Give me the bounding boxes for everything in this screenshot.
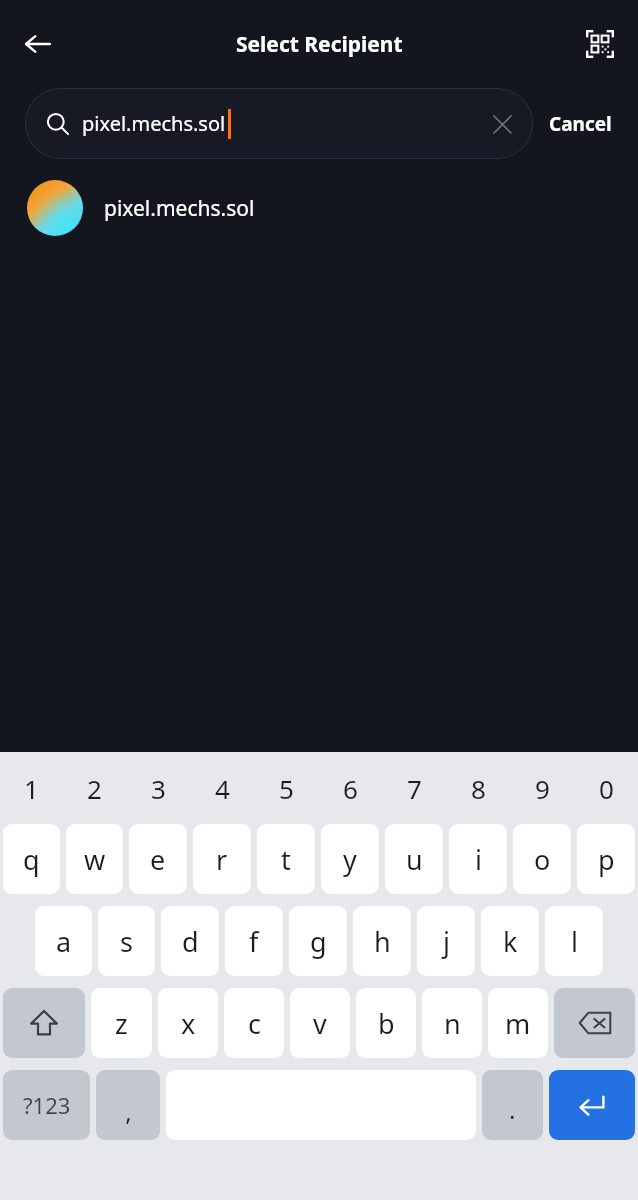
staticText: ?123 (23, 1090, 71, 1120)
button[interactable]: b (356, 988, 416, 1058)
button[interactable]: Enter (549, 1070, 635, 1140)
staticText: o (534, 841, 551, 878)
button[interactable]: 0 (574, 752, 638, 824)
button[interactable]: d (161, 906, 219, 976)
button[interactable]: q (3, 824, 60, 894)
staticText: 0 (599, 771, 614, 806)
staticText: 3 (151, 771, 166, 806)
staticText: e (150, 841, 166, 878)
staticText: l (571, 923, 578, 960)
button[interactable]: r (193, 824, 251, 894)
button[interactable]: o (513, 824, 571, 894)
staticText: a (56, 923, 72, 960)
button[interactable]: u (385, 824, 443, 894)
staticText: f (249, 923, 259, 960)
staticText: 2 (87, 771, 102, 806)
button[interactable]: f (225, 906, 283, 976)
staticText: v (313, 1005, 327, 1042)
button[interactable]: , (96, 1070, 160, 1140)
button[interactable]: 3 (126, 752, 190, 824)
staticText: x (181, 1005, 196, 1042)
button[interactable]: w (66, 824, 123, 894)
staticText: pixel.mechs.sol (104, 194, 255, 223)
staticText: u (406, 841, 423, 878)
button[interactable]: y (321, 824, 379, 894)
button[interactable]: g (289, 906, 347, 976)
button[interactable]: Clear (489, 111, 515, 137)
button[interactable]: h (353, 906, 411, 976)
staticText: n (444, 1005, 461, 1042)
button[interactable]: z (91, 988, 152, 1058)
staticText: 8 (471, 771, 486, 806)
button[interactable]: Cancel (533, 103, 616, 145)
button[interactable]: 9 (510, 752, 574, 824)
button[interactable]: t (257, 824, 315, 894)
staticText: t (281, 841, 291, 878)
staticText: 7 (407, 771, 422, 806)
button[interactable]: k (481, 906, 539, 976)
staticText: . (509, 1093, 516, 1126)
staticText: Select Recipient (236, 30, 403, 59)
button[interactable]: a (35, 906, 92, 976)
button[interactable]: 8 (446, 752, 510, 824)
staticText: c (248, 1005, 261, 1042)
button[interactable]: Back (10, 16, 66, 72)
staticText: j (443, 923, 450, 960)
staticText: k (503, 923, 518, 960)
staticText: w (84, 841, 106, 878)
staticText: 5 (279, 771, 294, 806)
button[interactable]: 5 (254, 752, 318, 824)
button[interactable]: e (129, 824, 187, 894)
button[interactable]: m (488, 988, 548, 1058)
button[interactable]: x (158, 988, 218, 1058)
button[interactable]: pixel.mechs.sol (0, 170, 638, 246)
button[interactable]: 1 (0, 752, 63, 824)
staticText: p (598, 841, 615, 878)
staticText: pixel.mechs.sol (82, 110, 226, 137)
button[interactable]: v (290, 988, 350, 1058)
button[interactable]: 7 (382, 752, 446, 824)
staticText: 1 (24, 771, 39, 806)
button[interactable]: Shift (3, 988, 85, 1058)
staticText: d (182, 923, 199, 960)
staticText: , (125, 1095, 132, 1128)
staticText: y (343, 841, 357, 878)
button[interactable]: l (545, 906, 603, 976)
button[interactable]: 4 (190, 752, 254, 824)
staticText: Cancel (549, 111, 612, 137)
button[interactable]: p (577, 824, 635, 894)
staticText: i (475, 841, 482, 878)
staticText: b (378, 1005, 395, 1042)
staticText: r (216, 841, 228, 878)
staticText: h (374, 923, 391, 960)
staticText: z (115, 1005, 128, 1042)
button[interactable]: s (98, 906, 155, 976)
button[interactable]: c (224, 988, 284, 1058)
staticText: g (310, 923, 327, 960)
button[interactable]: Backspace (554, 988, 635, 1058)
button[interactable]: i (449, 824, 507, 894)
button[interactable]: 2 (63, 752, 126, 824)
button[interactable]: . (482, 1070, 543, 1140)
staticText: 9 (535, 771, 550, 806)
button[interactable]: Scan QR code (574, 18, 626, 70)
staticText: 6 (343, 771, 358, 806)
button[interactable]: ?123 (3, 1070, 90, 1140)
button[interactable]: n (422, 988, 482, 1058)
staticText: 4 (215, 771, 230, 806)
button[interactable]: pixel.mechs.sol (25, 88, 533, 159)
button[interactable]: 6 (318, 752, 382, 824)
staticText: q (23, 841, 40, 878)
staticText: m (505, 1005, 531, 1042)
staticText: s (120, 923, 133, 960)
button[interactable]: j (417, 906, 475, 976)
